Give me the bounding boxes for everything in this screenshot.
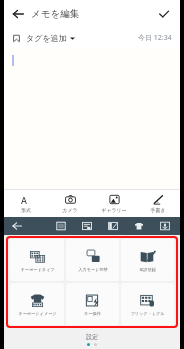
- button[interactable]: Back: [7, 3, 29, 25]
- staticText: ギャラリー: [101, 207, 127, 213]
- button[interactable]: Voice input: [158, 219, 172, 233]
- staticText: メモを編集: [31, 8, 80, 20]
- button[interactable]: Keyboard layout: [54, 219, 68, 233]
- button[interactable]: Theme: [132, 219, 146, 233]
- button[interactable]: Aa: [4, 190, 48, 217]
- staticText: 形式: [21, 207, 31, 213]
- button[interactable]: Conversion settings: [80, 219, 94, 233]
- button[interactable]: カメラ: [48, 190, 92, 217]
- staticText: 単語登録: [139, 267, 156, 272]
- button[interactable]: Close keyboard settings: [10, 219, 24, 233]
- staticText: フリック・トグル: [130, 311, 165, 316]
- staticText: 今日 12:34: [138, 33, 172, 43]
- staticText: キーボードイメージ: [18, 311, 57, 316]
- staticText: キーボードタイプ: [20, 267, 55, 272]
- staticText: Aa: [21, 194, 32, 205]
- button[interactable]: フリック・トグル: [121, 283, 174, 325]
- staticText: 入力モード切替: [78, 267, 108, 272]
- button[interactable]: 入力モード切替: [66, 239, 119, 281]
- staticText: カメラ: [62, 207, 78, 213]
- button[interactable]: ギャラリー: [92, 190, 136, 217]
- button[interactable]: 単語登録: [121, 239, 174, 281]
- button[interactable]: タグを追加: [12, 33, 75, 43]
- button[interactable]: キーボードイメージ: [10, 283, 64, 325]
- staticText: キー操作: [84, 311, 101, 316]
- button[interactable]: 手書き: [136, 190, 180, 217]
- staticText: タグを追加: [26, 33, 67, 43]
- staticText: 手書き: [150, 207, 166, 213]
- button[interactable]: キー操作: [66, 283, 119, 325]
- button[interactable]: Edit: [106, 219, 120, 233]
- button[interactable]: Save: [153, 3, 175, 25]
- staticText: 設定: [86, 333, 98, 341]
- button[interactable]: キーボードタイプ: [10, 239, 64, 281]
